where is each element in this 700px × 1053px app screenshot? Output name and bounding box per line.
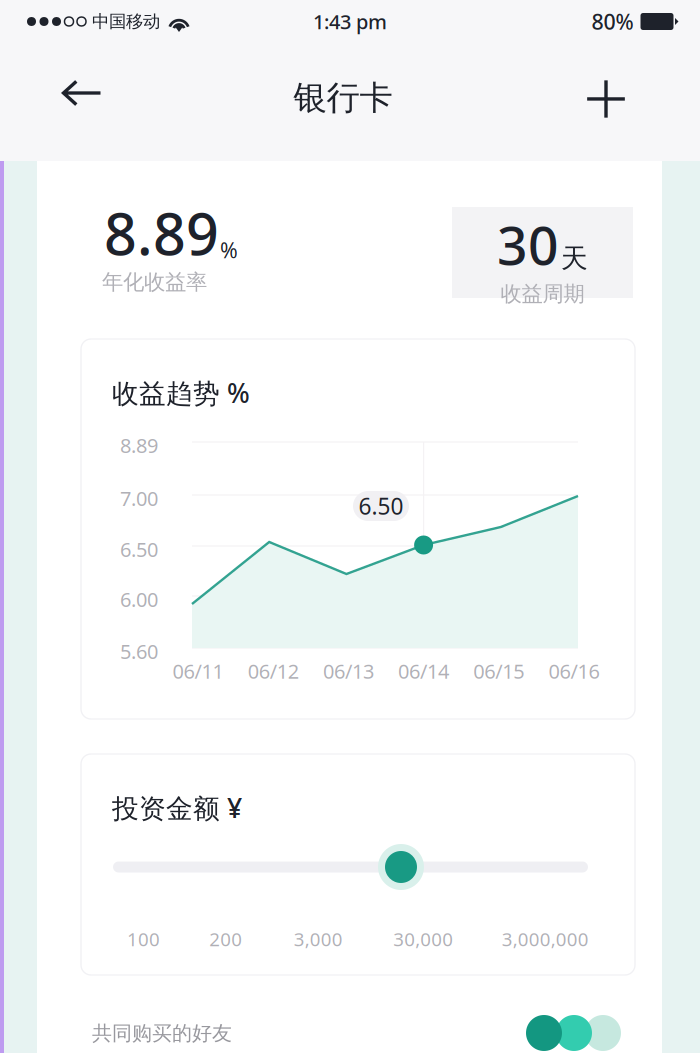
staticText: 8.89 — [120, 432, 158, 459]
staticText: 中国移动 — [92, 11, 160, 32]
staticText: 30 — [497, 209, 559, 280]
staticText: 银行卡 — [293, 77, 392, 118]
staticText: 投资金额 ¥ — [112, 790, 242, 825]
staticText: 收益趋势 % — [112, 375, 250, 410]
staticText: 06/12 — [248, 658, 299, 684]
staticText: 5.60 — [120, 638, 158, 665]
staticText: 06/15 — [473, 658, 524, 684]
staticText: % — [220, 236, 238, 264]
staticText: 80% — [591, 7, 633, 36]
staticText: 6.00 — [120, 586, 158, 613]
staticText: 3,000 — [294, 927, 343, 951]
staticText: 06/16 — [548, 658, 599, 684]
button[interactable]: Add — [573, 66, 639, 132]
staticText: 30,000 — [393, 927, 453, 951]
staticText: 1:43 pm — [313, 8, 387, 35]
staticText: 7.00 — [120, 485, 158, 512]
staticText: 8.89 — [104, 195, 219, 271]
button[interactable]: Investment amount — [113, 843, 588, 891]
staticText: 共同购买的好友 — [92, 1021, 232, 1046]
staticText: 天 — [561, 242, 588, 275]
button[interactable]: Back — [45, 63, 119, 123]
staticText: 年化收益率 — [102, 269, 207, 295]
staticText: 06/14 — [398, 658, 449, 684]
staticText: 6.50 — [120, 536, 158, 563]
staticText: 3,000,000 — [502, 927, 589, 951]
staticText: 06/13 — [323, 658, 374, 684]
staticText: 100 — [127, 927, 160, 951]
staticText: 收益周期 — [500, 281, 584, 307]
staticText: 200 — [209, 927, 242, 951]
staticText: 6.50 — [358, 491, 403, 521]
staticText: 06/11 — [172, 658, 223, 684]
